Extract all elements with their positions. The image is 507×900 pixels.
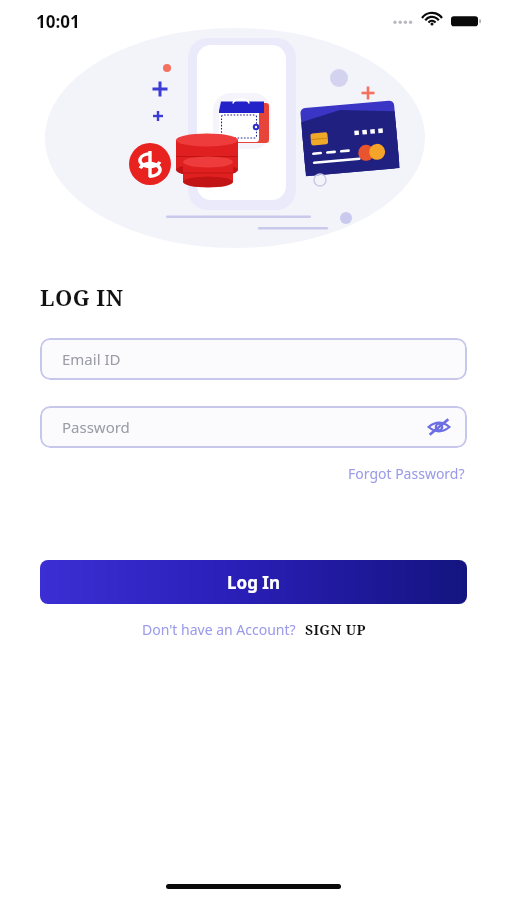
button[interactable]: Email ID	[40, 338, 467, 380]
staticText: Forgot Password?	[348, 464, 465, 483]
button[interactable]: Show password	[421, 409, 457, 445]
staticText: 10:01	[36, 10, 80, 33]
button[interactable]: Log In	[40, 560, 467, 604]
staticText: Log In	[227, 571, 280, 594]
staticText: Password	[62, 417, 130, 437]
staticText: LOG IN	[40, 282, 124, 312]
staticText: Email ID	[62, 349, 121, 369]
button[interactable]: Password	[40, 406, 467, 448]
staticText: SIGN UP	[305, 620, 366, 639]
staticText: Don't have an Account?	[142, 620, 296, 639]
button[interactable]: Forgot Password?	[346, 462, 467, 485]
button[interactable]: SIGN UP	[305, 620, 366, 639]
